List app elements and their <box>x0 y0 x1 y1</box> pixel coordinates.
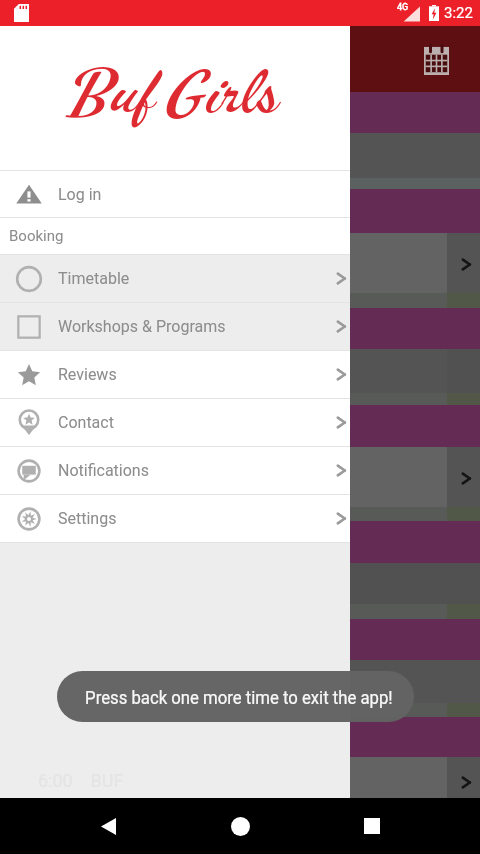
staticText: Press back one more time to exit the app… <box>85 688 393 709</box>
staticText: Booking <box>9 227 64 245</box>
staticText: Buf Girls <box>70 54 281 132</box>
button[interactable]: Home <box>218 804 262 848</box>
button[interactable]: Back <box>86 804 130 848</box>
button[interactable]: Contact <box>0 399 350 446</box>
button[interactable]: Log in <box>0 171 350 217</box>
button[interactable]: Notifications <box>0 447 350 494</box>
button[interactable]: Recents <box>350 804 394 848</box>
button[interactable]: Timetable <box>0 255 350 302</box>
staticText: 6:00 BUF <box>38 770 124 791</box>
staticText: Settings <box>58 509 117 528</box>
staticText: Workshops & Programs <box>58 317 226 336</box>
other: Open <box>458 254 474 275</box>
other: Open <box>458 468 474 489</box>
staticText: Timetable <box>58 269 130 288</box>
staticText: 4G <box>397 2 409 13</box>
button[interactable]: Workshops & Programs <box>0 303 350 350</box>
other: Open <box>458 772 474 793</box>
button[interactable]: Settings <box>0 495 350 542</box>
button[interactable]: Calendar <box>424 44 449 75</box>
button[interactable]: Reviews <box>0 351 350 398</box>
staticText: Contact <box>58 413 114 432</box>
staticText: 3:22 <box>444 4 473 22</box>
staticText: Notifications <box>58 461 149 480</box>
staticText: Reviews <box>58 365 117 384</box>
staticText: Log in <box>58 185 102 204</box>
